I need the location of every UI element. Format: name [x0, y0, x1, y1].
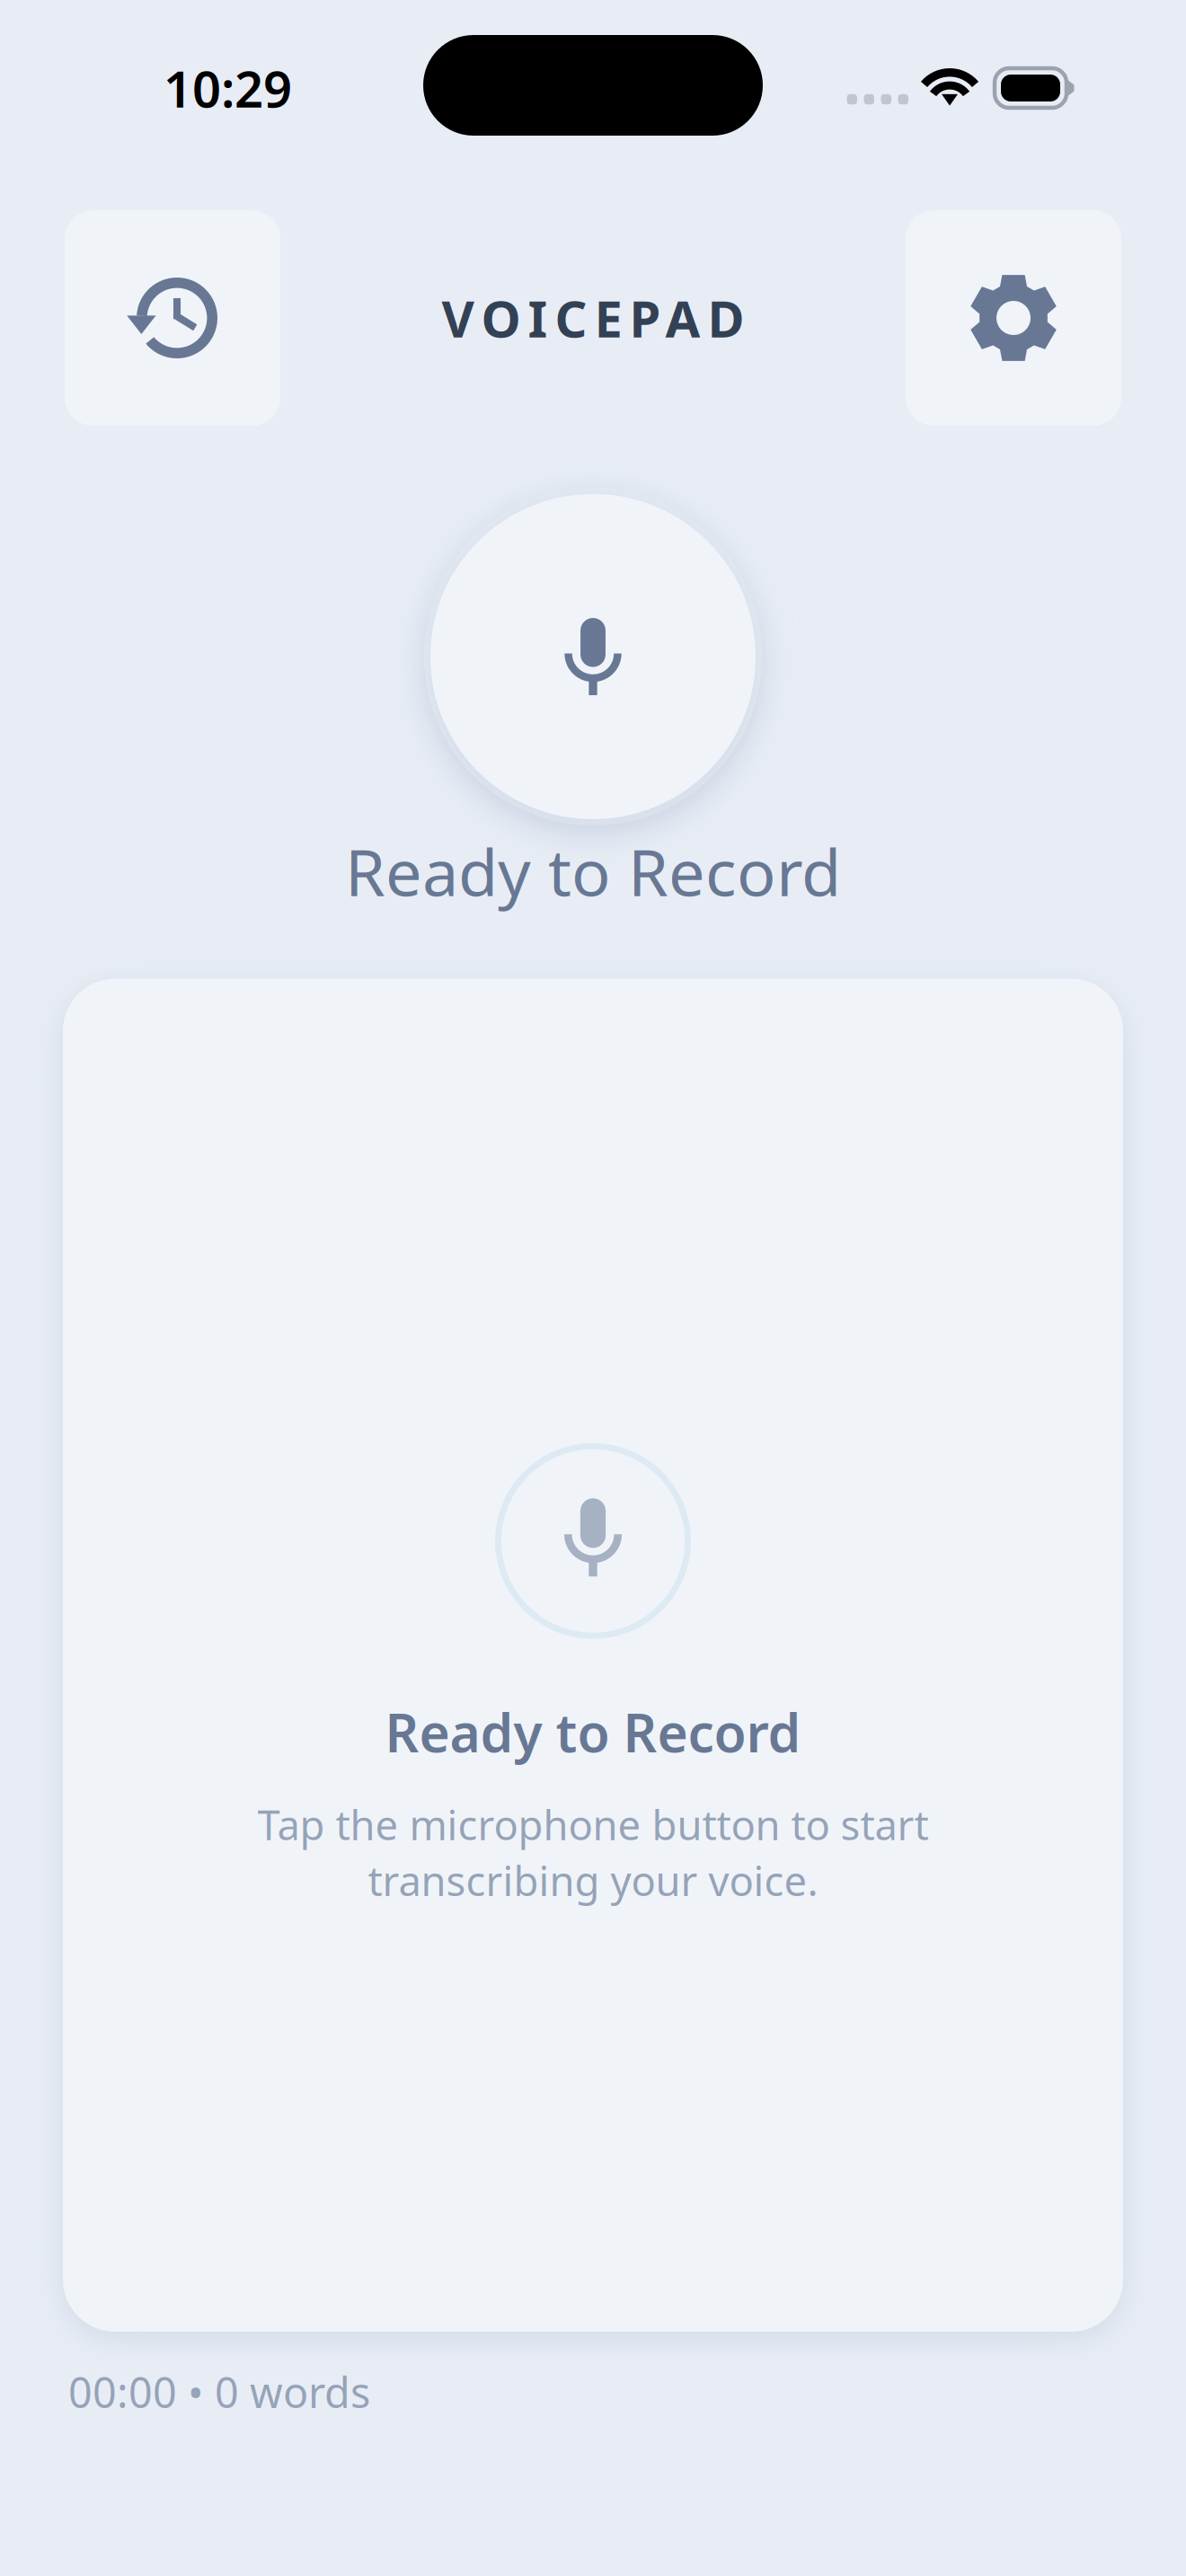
staticText: 10:29: [164, 55, 292, 121]
staticText: Ready to Record: [385, 1697, 801, 1767]
staticText: VOICEPAD: [442, 285, 744, 351]
button[interactable]: Settings: [906, 210, 1121, 426]
staticText: 00:00 • 0 words: [68, 2364, 370, 2420]
staticText: transcribing your voice.: [368, 1853, 818, 1907]
button[interactable]: History: [65, 210, 280, 426]
button[interactable]: Start recording: [395, 494, 791, 819]
staticText: Ready to Record: [345, 828, 841, 914]
staticText: Tap the microphone button to start: [257, 1797, 929, 1851]
